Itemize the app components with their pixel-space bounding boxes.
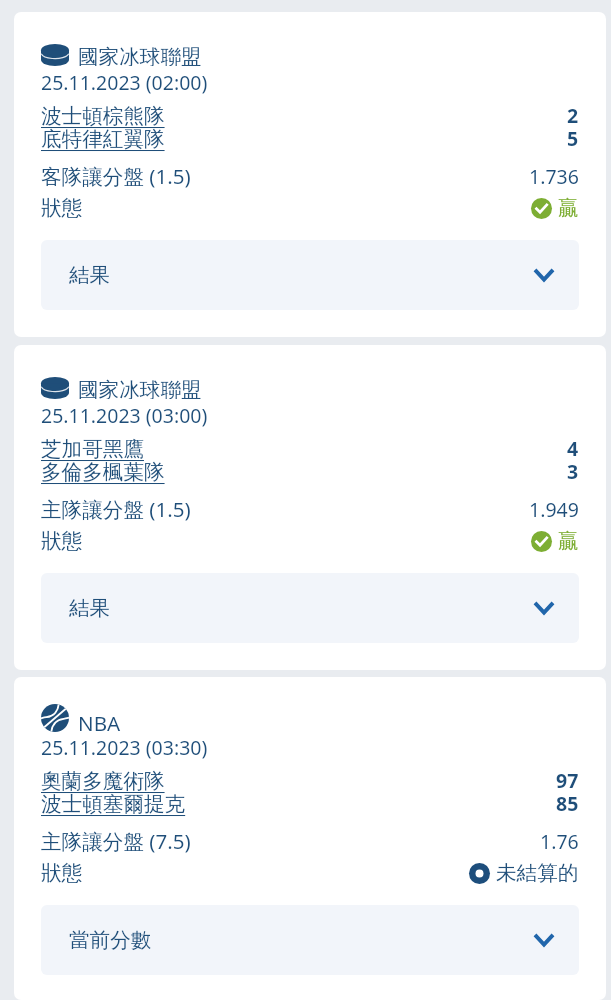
staticText: 狀態 <box>41 528 83 554</box>
staticText: 1.949 <box>529 496 579 523</box>
button[interactable]: 底特律紅翼隊 <box>41 126 165 152</box>
staticText: 25.11.2023 (03:30) <box>41 734 208 761</box>
staticText: 主隊讓分盤 (7.5) <box>41 827 191 855</box>
staticText: 波士頓塞爾提克 <box>41 791 186 817</box>
button[interactable]: 多倫多楓葉隊 <box>41 459 165 485</box>
staticText: 客隊讓分盤 (1.5) <box>41 162 191 190</box>
button[interactable]: 奧蘭多魔術隊 <box>41 768 165 794</box>
staticText: 當前分數 <box>69 927 152 953</box>
staticText: 波士頓棕熊隊 <box>41 103 165 129</box>
staticText: 國家冰球聯盟 <box>78 44 202 66</box>
staticText: 多倫多楓葉隊 <box>41 459 165 485</box>
staticText: 5 <box>567 125 579 152</box>
staticText: NBA <box>78 709 121 731</box>
button[interactable]: 當前分數 <box>41 905 579 975</box>
staticText: 2 <box>567 102 579 129</box>
staticText: 25.11.2023 (03:00) <box>41 402 208 429</box>
staticText: 結果 <box>69 595 111 621</box>
staticText: 底特律紅翼隊 <box>41 126 165 152</box>
staticText: 贏 <box>558 528 579 554</box>
staticText: 25.11.2023 (02:00) <box>41 69 208 96</box>
staticText: 主隊讓分盤 (1.5) <box>41 495 191 523</box>
staticText: 結果 <box>69 262 111 288</box>
staticText: 芝加哥黑鷹 <box>41 436 144 462</box>
staticText: 85 <box>556 790 579 817</box>
staticText: 1.736 <box>529 163 579 190</box>
staticText: 97 <box>556 767 579 794</box>
staticText: 贏 <box>558 195 579 221</box>
button[interactable]: 波士頓棕熊隊 <box>41 103 165 129</box>
staticText: 奧蘭多魔術隊 <box>41 768 165 794</box>
staticText: 狀態 <box>41 860 83 886</box>
button[interactable]: NBA <box>14 677 606 1000</box>
button[interactable]: 芝加哥黑鷹 <box>41 436 144 462</box>
button[interactable]: 國家冰球聯盟 <box>14 345 606 670</box>
staticText: 未結算的 <box>496 860 579 886</box>
button[interactable]: 波士頓塞爾提克 <box>41 791 186 817</box>
button[interactable]: 結果 <box>41 573 579 643</box>
staticText: 3 <box>567 458 579 485</box>
button[interactable]: 結果 <box>41 240 579 310</box>
staticText: 狀態 <box>41 195 83 221</box>
staticText: 1.76 <box>540 828 579 855</box>
staticText: 國家冰球聯盟 <box>78 377 202 399</box>
button[interactable]: 國家冰球聯盟 <box>14 12 606 337</box>
staticText: 4 <box>567 435 579 462</box>
